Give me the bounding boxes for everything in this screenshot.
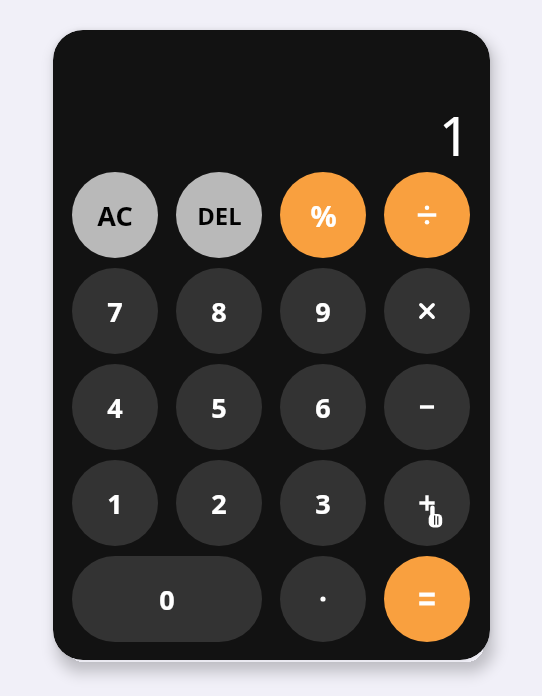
staticText: 9 [315, 293, 331, 330]
button[interactable]: 5 [176, 364, 262, 450]
button[interactable]: Equals [384, 556, 470, 642]
staticText: 0 [159, 581, 175, 618]
staticText: DEL [197, 199, 242, 232]
button[interactable]: Divide [384, 172, 470, 258]
staticText: % [310, 196, 337, 235]
staticText: 2 [211, 485, 227, 522]
button[interactable]: 3 [280, 460, 366, 546]
button[interactable]: 9 [280, 268, 366, 354]
staticText: 1 [439, 98, 470, 172]
staticText: 5 [211, 389, 227, 426]
staticText: 1 [107, 485, 123, 522]
button[interactable]: 7 [72, 268, 158, 354]
button[interactable]: Multiply [384, 268, 470, 354]
button[interactable]: % [280, 172, 366, 258]
button[interactable]: 0 [72, 556, 262, 642]
staticText: 3 [315, 485, 331, 522]
button[interactable]: 4 [72, 364, 158, 450]
button[interactable]: Decimal point [280, 556, 366, 642]
button[interactable]: Plus [384, 460, 470, 546]
staticText: AC [97, 197, 133, 234]
staticText: 8 [211, 293, 227, 330]
staticText: 4 [107, 389, 123, 426]
button[interactable]: 1 [72, 460, 158, 546]
button[interactable]: 8 [176, 268, 262, 354]
button[interactable]: 2 [176, 460, 262, 546]
button[interactable]: AC [72, 172, 158, 258]
button[interactable]: 6 [280, 364, 366, 450]
button[interactable]: Minus [384, 364, 470, 450]
staticText: 6 [315, 389, 331, 426]
button[interactable]: DEL [176, 172, 262, 258]
staticText: 7 [107, 293, 123, 330]
